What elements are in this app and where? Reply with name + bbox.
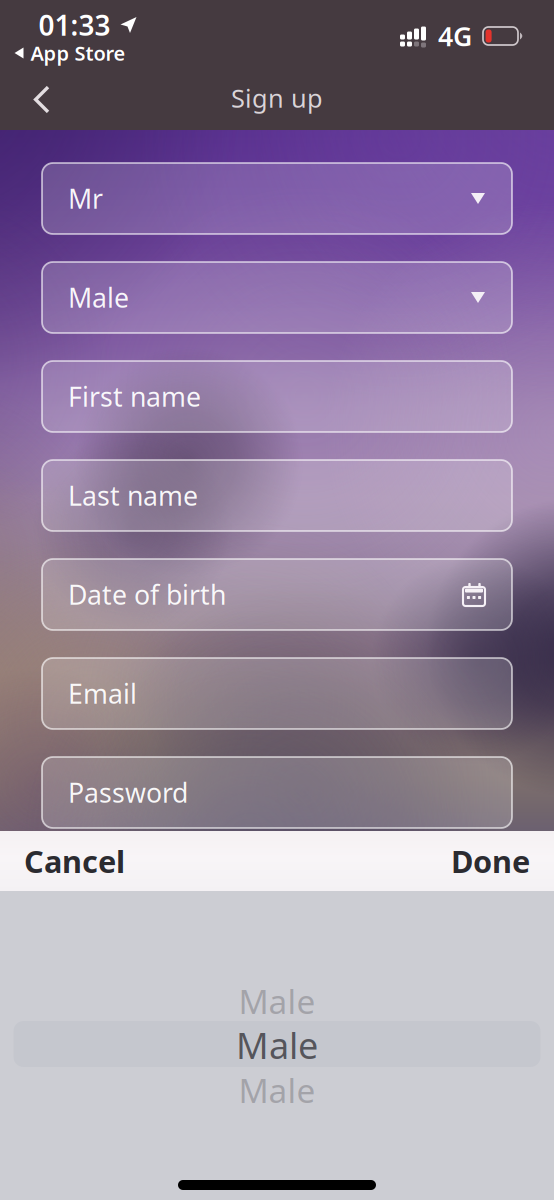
staticText: Sign up <box>231 81 323 115</box>
button[interactable]: Password <box>42 757 512 828</box>
button[interactable]: Cancel <box>0 831 145 891</box>
staticText: Male <box>236 1021 318 1069</box>
button[interactable]: Done <box>431 831 554 891</box>
button[interactable]: Male <box>0 1022 554 1068</box>
staticText: Email <box>68 676 137 711</box>
button[interactable]: Male <box>42 262 512 333</box>
button[interactable]: Male <box>0 979 554 1023</box>
staticText: Male <box>68 280 129 315</box>
button[interactable]: Date of birth <box>42 559 512 630</box>
staticText: 01:33 <box>38 6 110 44</box>
staticText: Password <box>68 775 188 810</box>
staticText: Male <box>238 979 315 1023</box>
button[interactable]: Male <box>0 1068 554 1112</box>
button[interactable]: Mr <box>42 163 512 234</box>
staticText: Date of birth <box>68 577 226 612</box>
button[interactable]: Last name <box>42 460 512 531</box>
button[interactable]: Email <box>42 658 512 729</box>
staticText: Male <box>238 1068 315 1112</box>
staticText: Done <box>451 841 530 881</box>
staticText: 4G <box>438 18 472 54</box>
staticText: Cancel <box>24 841 125 881</box>
staticText: Mr <box>68 181 103 216</box>
button[interactable]: First name <box>42 361 512 432</box>
button[interactable]: Back <box>7 70 73 127</box>
staticText: First name <box>68 379 201 414</box>
staticText: App Store <box>30 40 125 66</box>
staticText: Last name <box>68 478 198 513</box>
